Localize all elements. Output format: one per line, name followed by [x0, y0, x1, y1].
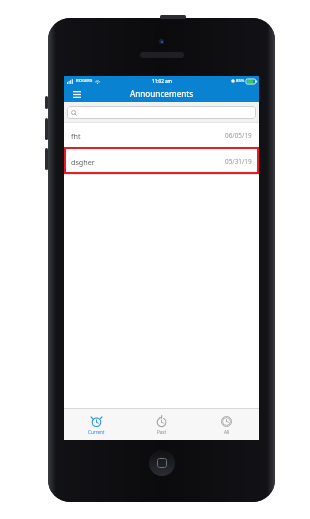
staticText: Past	[157, 429, 167, 435]
button[interactable]: All	[194, 409, 259, 440]
button[interactable]: Menu	[69, 86, 85, 102]
staticText: Announcements	[130, 88, 194, 99]
staticText: fht	[71, 131, 81, 141]
staticText: 85%	[236, 78, 245, 84]
staticText: 05/31/19	[225, 157, 252, 166]
button[interactable]	[67, 106, 256, 119]
button[interactable]: Past	[129, 409, 194, 440]
staticText: ROGERS	[76, 78, 93, 84]
staticText: dsgher	[71, 157, 95, 167]
button[interactable]: Current	[64, 409, 129, 440]
button[interactable]: dsgher	[64, 149, 259, 174]
button[interactable]: fht	[64, 123, 259, 148]
staticText: All	[224, 429, 230, 435]
staticText: 11:02 am	[152, 78, 172, 84]
staticText: Current	[88, 429, 105, 435]
staticText: 06/05/19	[225, 131, 252, 140]
